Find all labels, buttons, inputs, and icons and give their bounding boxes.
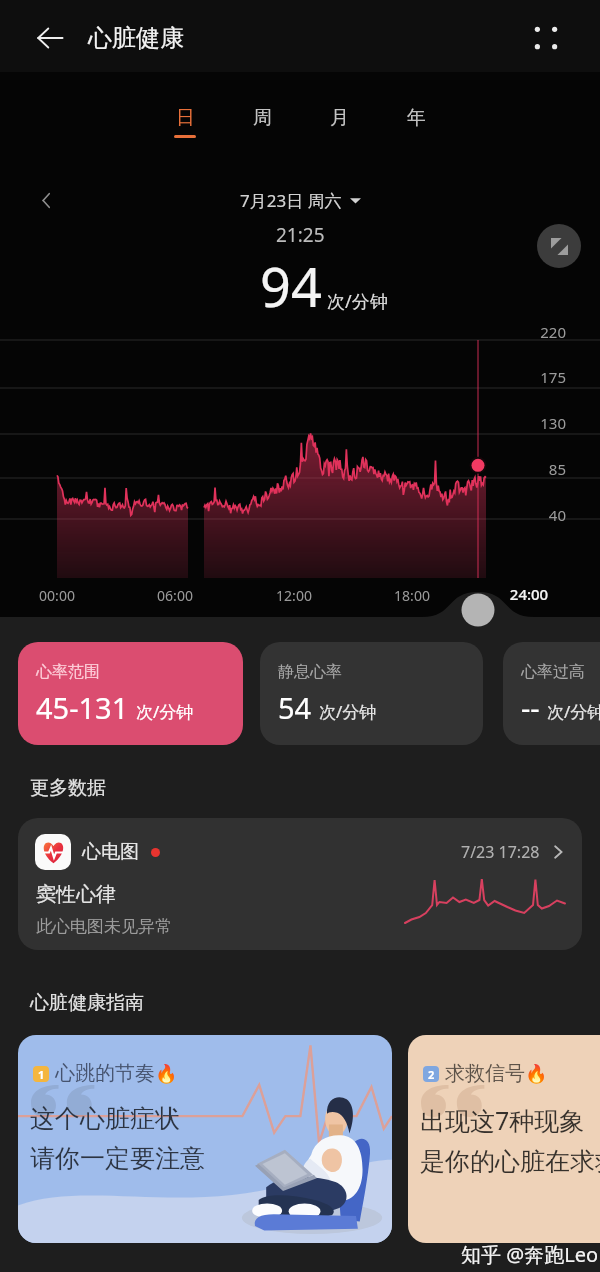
staticText: 更多数据 — [30, 776, 106, 800]
staticText: 18:00 — [372, 586, 452, 605]
staticText: 心脏健康指南 — [30, 991, 144, 1015]
button[interactable]: 周 — [239, 103, 285, 141]
button[interactable]: 7月23日 周六 — [236, 185, 365, 216]
button[interactable]: 日 — [162, 103, 208, 141]
staticText: 21:25 — [276, 222, 325, 248]
staticText: 2 — [428, 1067, 435, 1082]
staticText: 🔥 — [525, 1063, 548, 1084]
button[interactable]: 心率范围 — [18, 642, 243, 745]
staticText: 日 — [176, 106, 195, 130]
staticText: 心率过高 — [521, 662, 585, 682]
button[interactable]: 年 — [393, 103, 439, 141]
staticText: 175 — [506, 367, 566, 387]
button[interactable]: Back — [28, 16, 72, 60]
staticText: 这个心脏症状 — [30, 1103, 180, 1134]
staticText: 00:00 — [17, 586, 97, 605]
staticText: 24:00 — [489, 584, 569, 604]
staticText: 是你的心脏在求救 — [420, 1146, 600, 1177]
staticText: 心率范围 — [36, 662, 100, 682]
button[interactable]: 心电图 — [18, 818, 582, 950]
button[interactable]: 月 — [316, 103, 362, 141]
staticText: 窦性心律 — [36, 882, 116, 907]
staticText: 次/分钟 — [319, 700, 377, 723]
staticText: 月 — [330, 106, 349, 130]
staticText: 94 — [260, 249, 322, 323]
staticText: 7月23日 周六 — [240, 189, 342, 212]
staticText: 06:00 — [135, 586, 215, 605]
button[interactable]: Expand chart — [537, 224, 581, 268]
staticText: 心脏健康 — [88, 23, 184, 53]
staticText: 54 — [278, 688, 312, 727]
button[interactable]: 静息心率 — [260, 642, 483, 745]
button[interactable]: 心率过高 — [503, 642, 600, 745]
staticText: 130 — [506, 413, 566, 433]
staticText: 次/分钟 — [547, 700, 600, 723]
staticText: 知乎 @奔跑Leo — [461, 1241, 599, 1268]
button[interactable]: 2 — [408, 1035, 600, 1243]
staticText: 请你一定要注意 — [30, 1143, 205, 1174]
staticText: 此心电图未见异常 — [36, 916, 172, 937]
staticText: 220 — [506, 322, 566, 342]
button[interactable]: 1 — [18, 1035, 392, 1243]
staticText: 出现这7种现象 — [420, 1103, 585, 1137]
staticText: 85 — [506, 459, 566, 479]
staticText: 1 — [38, 1067, 45, 1082]
button[interactable]: More options — [524, 16, 568, 60]
staticText: 40 — [506, 505, 566, 525]
staticText: 求救信号 — [445, 1061, 525, 1086]
staticText: 周 — [253, 106, 272, 130]
staticText: 年 — [407, 106, 426, 130]
staticText: 心跳的节奏 — [55, 1061, 155, 1086]
staticText: 次/分钟 — [327, 289, 388, 314]
staticText: 45-131 — [36, 688, 129, 727]
staticText: 次/分钟 — [136, 700, 194, 723]
button[interactable]: Previous day — [28, 182, 64, 218]
staticText: 静息心率 — [278, 662, 342, 682]
staticText: 🔥 — [155, 1063, 178, 1084]
staticText: 7/23 17:28 — [461, 841, 540, 863]
staticText: 心电图 — [82, 840, 139, 864]
staticText: -- — [521, 688, 540, 727]
staticText: 12:00 — [254, 586, 334, 605]
